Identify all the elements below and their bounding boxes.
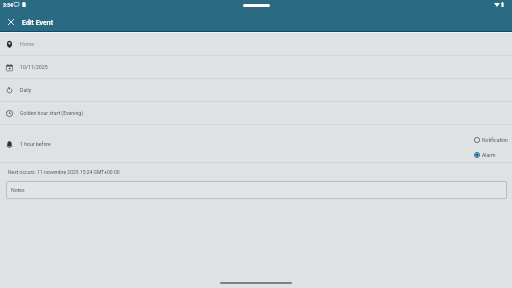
- staticText: Home: [20, 41, 34, 47]
- button[interactable]: Alarm: [474, 152, 496, 158]
- staticText: Edit Event: [22, 19, 53, 27]
- staticText: Notes: [11, 187, 25, 193]
- staticText: Next occurs: 11 novembre 2025 15:24 GMT+…: [8, 169, 120, 175]
- staticText: 3:54: [3, 2, 13, 8]
- button[interactable]: Golden hour start (Evening): [0, 102, 512, 124]
- staticText: Notification: [482, 137, 508, 143]
- button[interactable]: Notes: [6, 181, 507, 199]
- staticText: 10/11/2025: [20, 64, 48, 70]
- button[interactable]: Close: [0, 13, 22, 30]
- staticText: 1 hour before: [20, 141, 51, 147]
- button[interactable]: 1 hour before: [0, 125, 512, 162]
- button[interactable]: Home: [0, 33, 512, 55]
- button[interactable]: Daily: [0, 79, 512, 101]
- staticText: Golden hour start (Evening): [20, 110, 83, 116]
- button[interactable]: 10/11/2025: [0, 56, 512, 78]
- staticText: Daily: [20, 87, 32, 93]
- button[interactable]: Notification: [474, 137, 508, 143]
- staticText: Alarm: [482, 152, 496, 158]
